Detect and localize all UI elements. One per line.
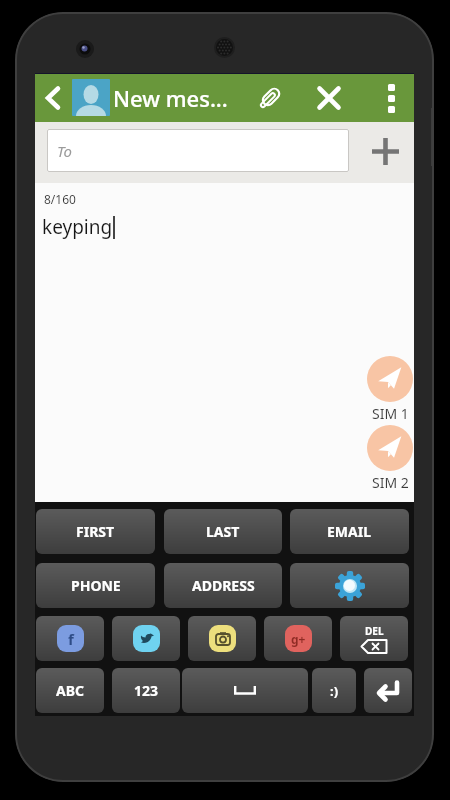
button[interactable]: ADDRESS	[164, 563, 282, 608]
staticText: g+	[291, 631, 306, 647]
button[interactable]: g+	[264, 616, 332, 661]
staticText: PHONE	[71, 576, 121, 595]
button[interactable]	[364, 668, 412, 713]
button[interactable]	[37, 78, 69, 118]
button[interactable]	[367, 356, 413, 402]
button[interactable]	[182, 668, 308, 713]
button[interactable]: PHONE	[36, 563, 155, 608]
button[interactable]: EMAIL	[290, 509, 409, 554]
button[interactable]: 123	[112, 668, 180, 713]
staticText: ADDRESS	[192, 576, 255, 595]
staticText: To	[57, 141, 72, 161]
button[interactable]: f	[36, 616, 104, 661]
button[interactable]: :)	[312, 668, 356, 713]
staticText: SIM 2	[372, 473, 409, 492]
staticText: ABC	[56, 681, 84, 700]
staticText: 123	[134, 681, 159, 700]
button[interactable]	[375, 78, 407, 118]
staticText: keyping	[42, 214, 113, 240]
button[interactable]	[365, 131, 405, 171]
button[interactable]: LAST	[164, 509, 282, 554]
staticText: :)	[330, 682, 339, 700]
button[interactable]	[367, 425, 413, 471]
staticText: SIM 1	[372, 404, 409, 423]
button[interactable]: DEL	[340, 616, 408, 661]
staticText: 8/160	[44, 191, 76, 207]
staticText: EMAIL	[327, 522, 372, 541]
button[interactable]	[290, 563, 409, 608]
button[interactable]	[112, 616, 180, 661]
staticText: New mes...	[113, 83, 228, 113]
staticText: FIRST	[76, 522, 115, 541]
button[interactable]	[72, 79, 110, 116]
staticText: f	[68, 629, 74, 649]
button[interactable]: ABC	[36, 668, 104, 713]
button[interactable]	[249, 78, 291, 118]
button[interactable]: To	[47, 129, 349, 172]
button[interactable]	[188, 616, 256, 661]
button[interactable]	[307, 78, 351, 118]
staticText: DEL	[365, 624, 384, 638]
staticText: LAST	[206, 522, 240, 541]
button[interactable]: FIRST	[36, 509, 155, 554]
